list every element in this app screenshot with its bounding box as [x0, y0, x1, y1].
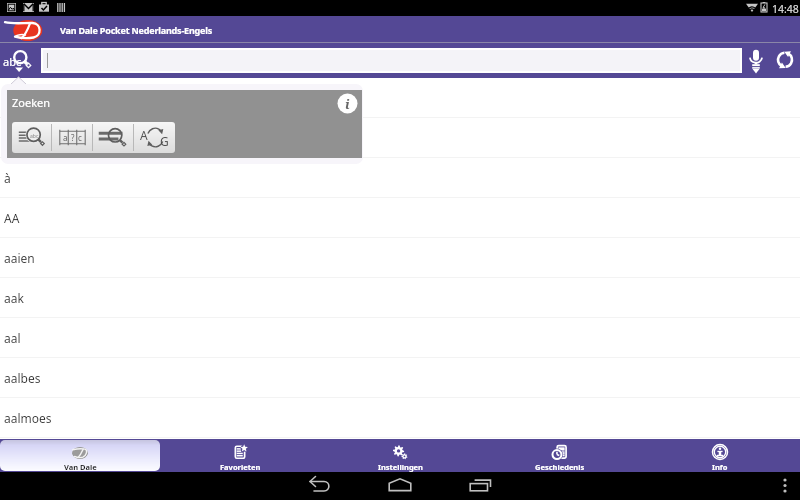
button[interactable]: aaien	[0, 238, 800, 278]
staticText: i	[345, 95, 350, 113]
button[interactable]: Jokerzoeken	[52, 122, 93, 153]
button[interactable]: Instellingen	[320, 440, 480, 471]
staticText: Favorieten	[220, 462, 261, 472]
staticText: c	[78, 132, 82, 143]
staticText: aal	[4, 330, 21, 346]
button[interactable]: Recente apps	[456, 472, 504, 500]
staticText: Van Dale Pocket Nederlands-Engels	[60, 24, 213, 36]
staticText: abc	[3, 54, 22, 69]
staticText: aalbes	[4, 370, 41, 386]
button[interactable]: Info	[337, 93, 358, 114]
staticText: ?	[71, 132, 75, 143]
button[interactable]: à	[0, 158, 800, 198]
staticText: 14:48	[772, 2, 799, 16]
button[interactable]: Van Dale	[0, 440, 160, 471]
staticText: A	[140, 127, 148, 143]
button[interactable]: aalbes	[0, 358, 800, 398]
button[interactable]: Zoek in lemma's	[12, 122, 52, 153]
button[interactable]: Home	[376, 472, 424, 500]
button[interactable]: Volledig zoeken	[93, 122, 134, 153]
button[interactable]: aak	[0, 278, 800, 318]
staticText: aaien	[4, 250, 35, 266]
button[interactable]: aalmoes	[0, 398, 800, 438]
staticText: abc	[30, 133, 39, 140]
staticText: AA	[4, 210, 20, 226]
button[interactable]: Spraakinvoer	[742, 43, 770, 78]
button[interactable]	[0, 118, 800, 158]
button[interactable]: Favorieten	[160, 440, 320, 471]
button[interactable]: Info	[640, 440, 800, 471]
button[interactable]: Meer opties	[772, 472, 798, 500]
staticText: a	[63, 132, 68, 143]
staticText: Geschiedenis	[535, 462, 585, 472]
staticText: à	[4, 170, 11, 186]
staticText: aalmoes	[4, 410, 52, 426]
button[interactable]: AA	[0, 198, 800, 238]
button[interactable]: Terug	[296, 472, 344, 500]
staticText: Info	[712, 462, 728, 472]
button[interactable]: Wissel talen	[771, 43, 799, 78]
staticText: Van Dale	[64, 462, 97, 471]
button[interactable]: Geschiedenis	[480, 440, 640, 471]
staticText: Instellingen	[378, 462, 423, 472]
button[interactable]: Zoekmodus	[0, 43, 41, 78]
button[interactable]	[0, 78, 800, 118]
staticText: Zoeken	[12, 95, 51, 110]
staticText: G	[160, 133, 169, 149]
button[interactable]: Vertaalrichting	[134, 122, 175, 153]
staticText: aak	[4, 290, 24, 306]
button[interactable]: aal	[0, 318, 800, 358]
